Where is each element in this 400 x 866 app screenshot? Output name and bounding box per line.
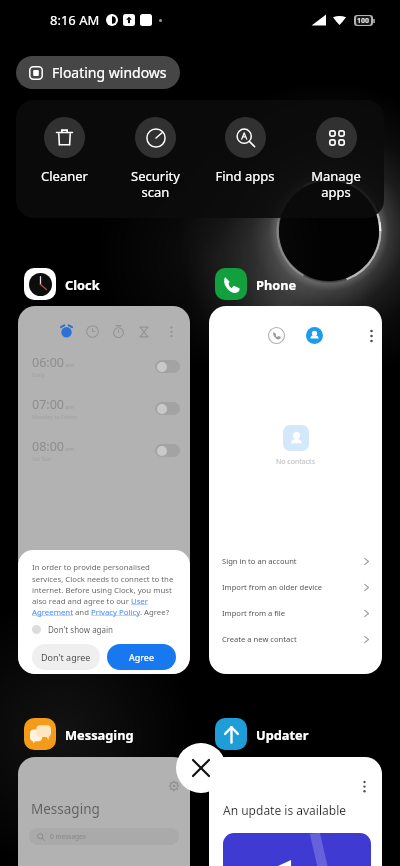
staticText: Import from an older device [222,582,323,592]
staticText: Cleaner [41,167,88,185]
button[interactable]: Alarm toggle [155,402,180,415]
button[interactable]: Close all [176,743,226,793]
staticText: Don't show again [48,624,114,635]
button[interactable]: Don't show again [32,624,114,635]
button[interactable]: Import from an older device [209,574,382,600]
button[interactable]: Dialpad [268,327,285,344]
button[interactable]: 06:00 [32,354,180,378]
staticText: Messaging [31,800,100,818]
staticText: No contacts [276,457,315,467]
button[interactable]: 07:00 [32,396,180,420]
staticText: Manage apps [311,167,361,200]
button[interactable]: Updater [215,718,309,750]
button[interactable]: Find apps [202,100,288,218]
button[interactable]: Alarm toggle [155,360,180,373]
button[interactable]: An update is available [209,757,382,866]
staticText: Daily [32,371,45,378]
button[interactable]: Security scan [112,100,198,218]
staticText: am [65,403,74,411]
staticText: 07:00 [32,396,64,413]
button[interactable]: Settings [169,781,179,791]
button[interactable]: Agree [107,644,176,670]
button[interactable]: Import from a file [209,600,382,626]
staticText: Clock [65,276,100,293]
button[interactable]: Phone [215,268,297,300]
staticText: am [65,445,74,453]
staticText: am [65,361,74,369]
staticText: Sign in to an account [222,556,297,566]
staticText: Phone [256,276,297,293]
button[interactable]: Manage apps [293,100,379,218]
staticText: In order to provide personalised service… [32,562,178,617]
staticText: 100 [357,16,370,25]
staticText: Updater [256,726,309,743]
staticText: Don't agree [41,651,91,663]
button[interactable]: 08:00 [32,438,180,462]
button[interactable]: 06:00 [18,306,190,674]
button[interactable]: Floating windows [16,56,180,89]
staticText: Find apps [215,167,275,185]
button[interactable]: 0 messages [29,828,179,845]
button[interactable]: Alarm toggle [155,444,180,457]
staticText: Sat Sun [32,455,52,462]
staticText: 08:00 [32,438,64,455]
button[interactable]: Messaging [24,718,134,750]
staticText: 0 messages [50,832,86,841]
button[interactable]: Cleaner [21,100,107,218]
button[interactable]: Dialpad [209,306,382,674]
staticText: Floating windows [52,63,167,82]
staticText: 8:16 AM [50,11,100,29]
button[interactable]: Contacts [306,327,323,344]
staticText: Messaging [65,726,134,743]
staticText: Create a new contact [222,634,297,644]
staticText: Agree [129,651,154,663]
staticText: 06:00 [32,354,64,371]
button[interactable]: Clock [24,268,100,300]
staticText: Monday to Friday [32,413,77,420]
button[interactable]: Settings [18,757,190,866]
button[interactable]: Don't agree [32,644,100,670]
staticText: An update is available [223,802,347,818]
button[interactable]: Create a new contact [209,626,382,652]
staticText: Security scan [131,167,180,200]
staticText: Import from a file [222,608,286,618]
button[interactable]: Sign in to an account [209,548,382,574]
